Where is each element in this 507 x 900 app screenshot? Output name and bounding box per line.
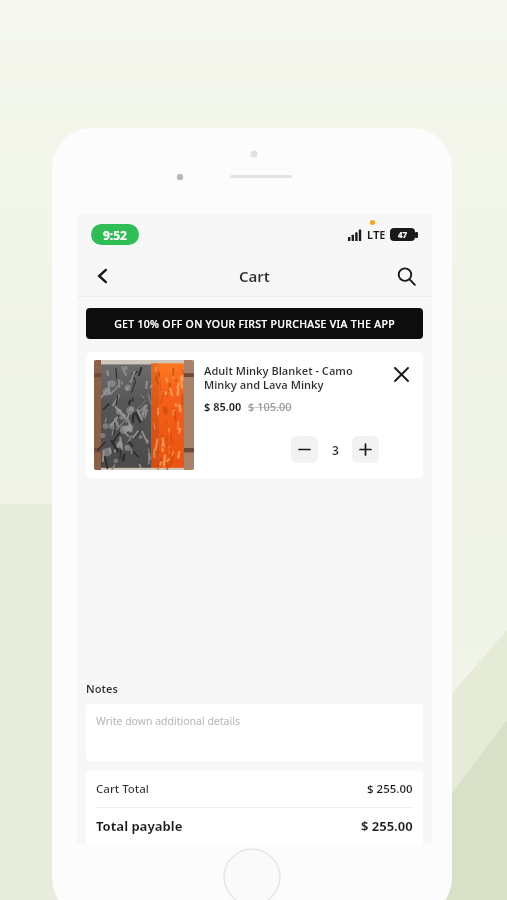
staticText: 3 (332, 442, 339, 458)
staticText: GET 10% OFF ON YOUR FIRST PURCHASE VIA T… (114, 317, 395, 331)
staticText: $ 105.00 (248, 399, 292, 414)
staticText: Adult Minky Blanket - Camo Minky and Lav… (204, 363, 353, 392)
staticText: Cart Total (96, 781, 149, 797)
staticText: 47 (398, 229, 408, 240)
button[interactable]: GET 10% OFF ON YOUR FIRST PURCHASE VIA T… (86, 308, 423, 339)
button[interactable]: Decrease quantity (291, 436, 318, 463)
staticText: Notes (86, 681, 118, 696)
button[interactable]: Write down additional details (86, 704, 423, 761)
staticText: LTE (367, 227, 386, 242)
button[interactable]: Back (83, 256, 123, 296)
button[interactable]: Remove item (385, 358, 417, 390)
button[interactable]: Adult Minky Blanket - Camo Minky and Lav… (86, 352, 423, 478)
staticText: 9:52 (103, 227, 127, 243)
staticText: Write down additional details (96, 714, 240, 728)
button[interactable]: Increase quantity (352, 436, 379, 463)
staticText: $ 255.00 (361, 817, 413, 835)
staticText: $ 255.00 (367, 781, 413, 797)
button[interactable]: Search (386, 256, 426, 296)
staticText: Total payable (96, 817, 183, 835)
staticText: $ 85.00 (204, 399, 242, 414)
staticText: Cart (239, 266, 270, 286)
